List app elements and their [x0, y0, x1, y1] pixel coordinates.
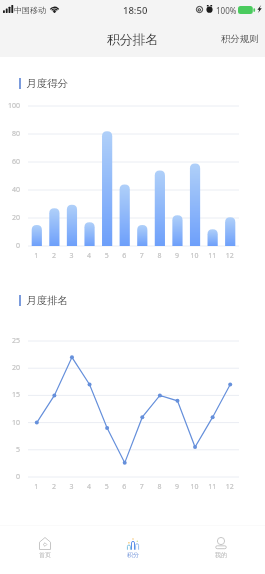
staticText: 月度排名: [26, 294, 68, 306]
staticText: 积分排名: [107, 32, 159, 48]
staticText: 积分: [127, 551, 139, 559]
staticText: 中国移动: [14, 5, 46, 15]
staticText: 月度得分: [26, 77, 68, 89]
button[interactable]: Home: [0, 526, 89, 574]
button[interactable]: Points: [89, 526, 177, 574]
staticText: 100%: [216, 5, 237, 16]
staticText: 积分规则: [221, 33, 259, 45]
button[interactable]: Profile: [177, 526, 265, 574]
staticText: 首页: [39, 551, 51, 559]
staticText: 我的: [215, 551, 227, 559]
button[interactable]: 积分规则: [209, 24, 265, 54]
staticText: 18:50: [123, 4, 148, 17]
